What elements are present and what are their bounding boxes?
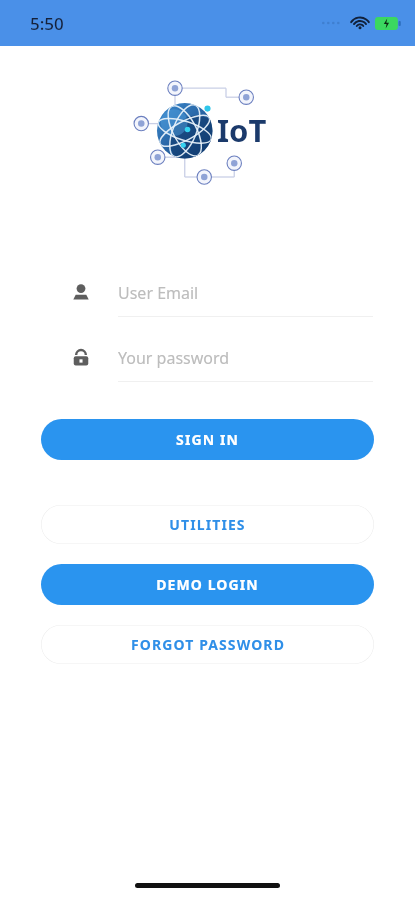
button[interactable]: User Email [0, 276, 415, 310]
staticText: UTILITIES [169, 515, 246, 534]
button[interactable]: Your password [0, 341, 415, 375]
staticText: User Email [118, 282, 199, 304]
button[interactable]: UTILITIES [41, 505, 374, 544]
button[interactable]: FORGOT PASSWORD [41, 625, 374, 664]
staticText: FORGOT PASSWORD [131, 635, 285, 654]
staticText: SIGN IN [176, 430, 239, 449]
staticText: IoT [217, 109, 267, 151]
button[interactable]: DEMO LOGIN [41, 564, 374, 605]
staticText: 5:50 [30, 12, 64, 35]
button[interactable]: SIGN IN [41, 419, 374, 460]
staticText: Your password [118, 347, 230, 369]
staticText: DEMO LOGIN [156, 575, 259, 594]
